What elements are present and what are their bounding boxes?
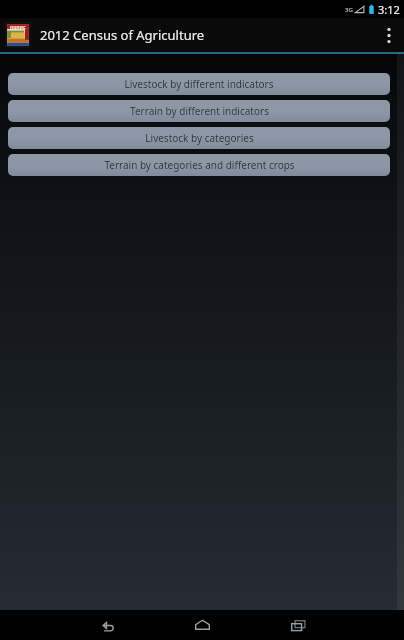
button[interactable]: Terrain by categories and different crop… xyxy=(8,154,390,176)
button[interactable]: Livestock by different indicators xyxy=(8,73,390,95)
button[interactable]: Home xyxy=(176,610,228,640)
button[interactable]: App icon xyxy=(5,22,31,48)
staticText: попис xyxy=(10,24,26,31)
staticText: Terrain by different indicators xyxy=(130,104,269,118)
staticText: 2012 Census of Agriculture xyxy=(40,26,205,44)
staticText: Terrain by categories and different crop… xyxy=(104,158,295,172)
button[interactable]: Livestock by categories xyxy=(8,127,390,149)
button[interactable]: Recent apps xyxy=(272,610,324,640)
button[interactable]: Terrain by different indicators xyxy=(8,100,390,122)
staticText: Livestock by categories xyxy=(145,131,254,145)
staticText: 3G xyxy=(345,6,353,14)
button[interactable]: More options xyxy=(376,18,402,52)
staticText: Livestock by different indicators xyxy=(124,77,274,91)
staticText: 3:12 xyxy=(378,2,400,17)
button[interactable]: Back xyxy=(80,610,132,640)
